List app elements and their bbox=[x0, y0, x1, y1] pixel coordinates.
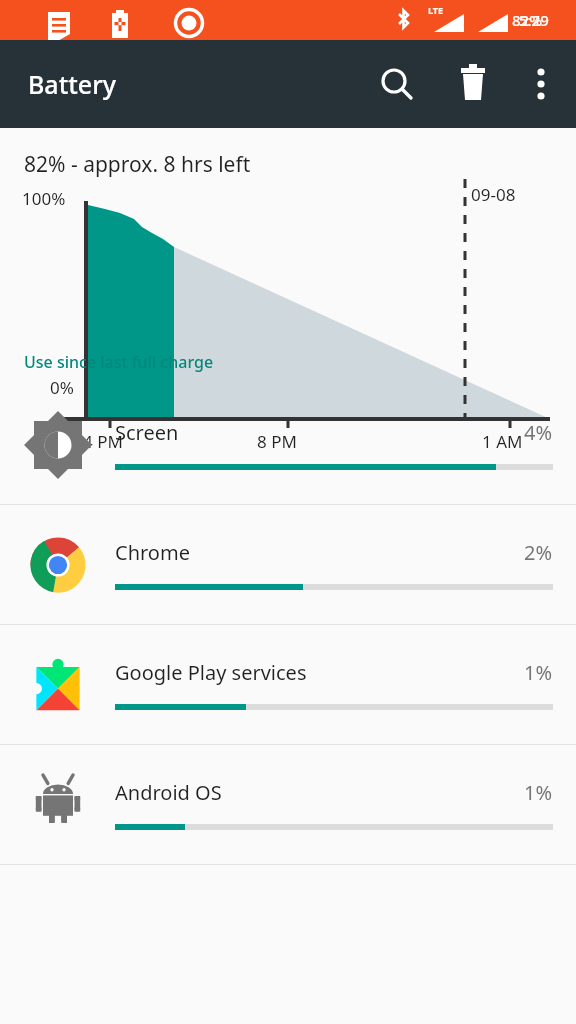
staticText: Use since last full charge bbox=[24, 351, 214, 373]
staticText: Battery bbox=[28, 67, 116, 101]
button[interactable]: Screen bbox=[0, 385, 576, 504]
button[interactable]: Android OS bbox=[0, 745, 576, 864]
staticText: 1% bbox=[524, 779, 553, 806]
staticText: 8 PM bbox=[257, 430, 297, 453]
staticText: Google Play services bbox=[115, 659, 307, 686]
staticText: 82% bbox=[512, 10, 542, 30]
staticText: Android OS bbox=[115, 779, 222, 806]
staticText: 82% - approx. 8 hrs left bbox=[24, 150, 251, 179]
button[interactable]: Use since last full charge bbox=[0, 339, 576, 385]
staticText: 4% bbox=[524, 419, 553, 446]
staticText: 5:29 bbox=[519, 10, 576, 30]
staticText: 100% bbox=[22, 187, 66, 210]
staticText: 1 AM bbox=[482, 430, 523, 453]
staticText: LTE bbox=[428, 4, 444, 16]
staticText: 0% bbox=[50, 376, 74, 399]
button[interactable]: More options bbox=[515, 58, 567, 110]
button[interactable]: Google Play services bbox=[0, 625, 576, 744]
staticText: 2% bbox=[524, 539, 553, 566]
staticText: Screen bbox=[115, 419, 179, 446]
staticText: 1% bbox=[524, 659, 553, 686]
staticText: Chrome bbox=[115, 539, 190, 566]
button[interactable]: Chrome bbox=[0, 505, 576, 624]
button[interactable]: Delete bbox=[445, 56, 501, 112]
staticText: 09-08 bbox=[471, 183, 516, 206]
button[interactable]: Search bbox=[368, 56, 424, 112]
staticText: 4 PM bbox=[83, 430, 123, 453]
